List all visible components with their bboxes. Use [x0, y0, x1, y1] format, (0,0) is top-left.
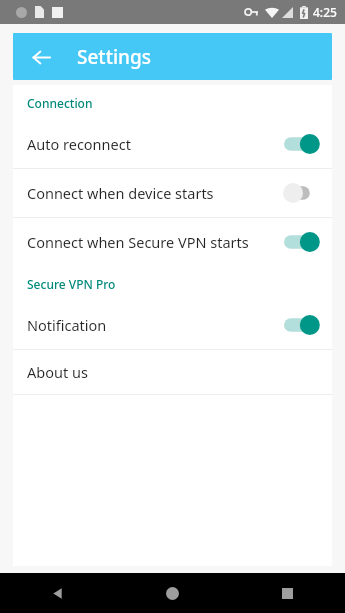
button[interactable]: Home — [115, 573, 230, 613]
button[interactable]: Notification — [13, 301, 332, 349]
staticText: Auto reconnect — [27, 134, 284, 154]
button[interactable]: Back — [0, 573, 115, 613]
staticText: Settings — [77, 44, 151, 70]
staticText: Connect when device starts — [27, 183, 284, 203]
button[interactable]: About us — [13, 350, 332, 394]
staticText: Notification — [27, 315, 284, 335]
staticText: Secure VPN Pro — [27, 276, 116, 292]
button[interactable]: Connect when Secure VPN starts — [13, 218, 332, 266]
button[interactable]: Connect when device starts — [13, 169, 332, 217]
staticText: Connect when Secure VPN starts — [27, 232, 284, 252]
staticText: About us — [27, 362, 88, 382]
button[interactable]: Auto reconnect — [13, 120, 332, 168]
button[interactable]: Recent apps — [230, 573, 345, 613]
button[interactable]: Back — [23, 39, 59, 75]
staticText: 4:25 — [313, 4, 337, 20]
staticText: Connection — [27, 95, 93, 111]
